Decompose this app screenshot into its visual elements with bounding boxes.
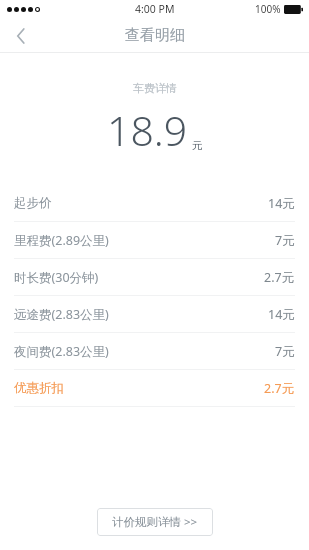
staticText: 2.7元 (264, 380, 295, 397)
staticText: 优惠折扣 (14, 380, 64, 396)
staticText: 计价规则详情 >> (112, 514, 198, 530)
staticText: 4:00 PM (135, 2, 175, 16)
button[interactable]: 时长费(30分钟) (0, 259, 309, 295)
staticText: 车费详情 (133, 81, 177, 95)
staticText: 元 (192, 139, 203, 152)
staticText: 夜间费(2.83公里) (14, 343, 109, 360)
staticText: 100% (255, 2, 281, 16)
staticText: 时长费(30分钟) (14, 269, 99, 286)
button[interactable]: 起步价 (0, 185, 309, 221)
staticText: 远途费(2.83公里) (14, 306, 109, 323)
button[interactable]: 里程费(2.89公里) (0, 222, 309, 258)
button[interactable]: 优惠折扣 (0, 370, 309, 406)
staticText: 14元 (268, 306, 295, 323)
button[interactable]: 夜间费(2.83公里) (0, 333, 309, 369)
staticText: 起步价 (14, 195, 52, 211)
button[interactable]: Back (0, 18, 42, 53)
button[interactable]: 计价规则详情 >> (97, 508, 213, 536)
staticText: 里程费(2.89公里) (14, 232, 109, 249)
staticText: 18.9 (107, 102, 188, 158)
button[interactable]: 远途费(2.83公里) (0, 296, 309, 332)
staticText: 查看明细 (125, 26, 185, 45)
staticText: 14元 (268, 195, 295, 212)
staticText: 7元 (275, 343, 295, 360)
staticText: 7元 (275, 232, 295, 249)
staticText: 2.7元 (264, 269, 295, 286)
